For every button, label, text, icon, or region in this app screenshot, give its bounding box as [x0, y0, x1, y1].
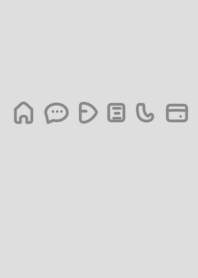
- button[interactable]: VOOM: [74, 99, 102, 127]
- button[interactable]: News: [102, 99, 130, 127]
- button[interactable]: Wallet: [163, 99, 191, 127]
- button[interactable]: Chats: [42, 99, 70, 127]
- button[interactable]: Calls: [131, 99, 159, 127]
- button[interactable]: Home: [10, 98, 38, 126]
